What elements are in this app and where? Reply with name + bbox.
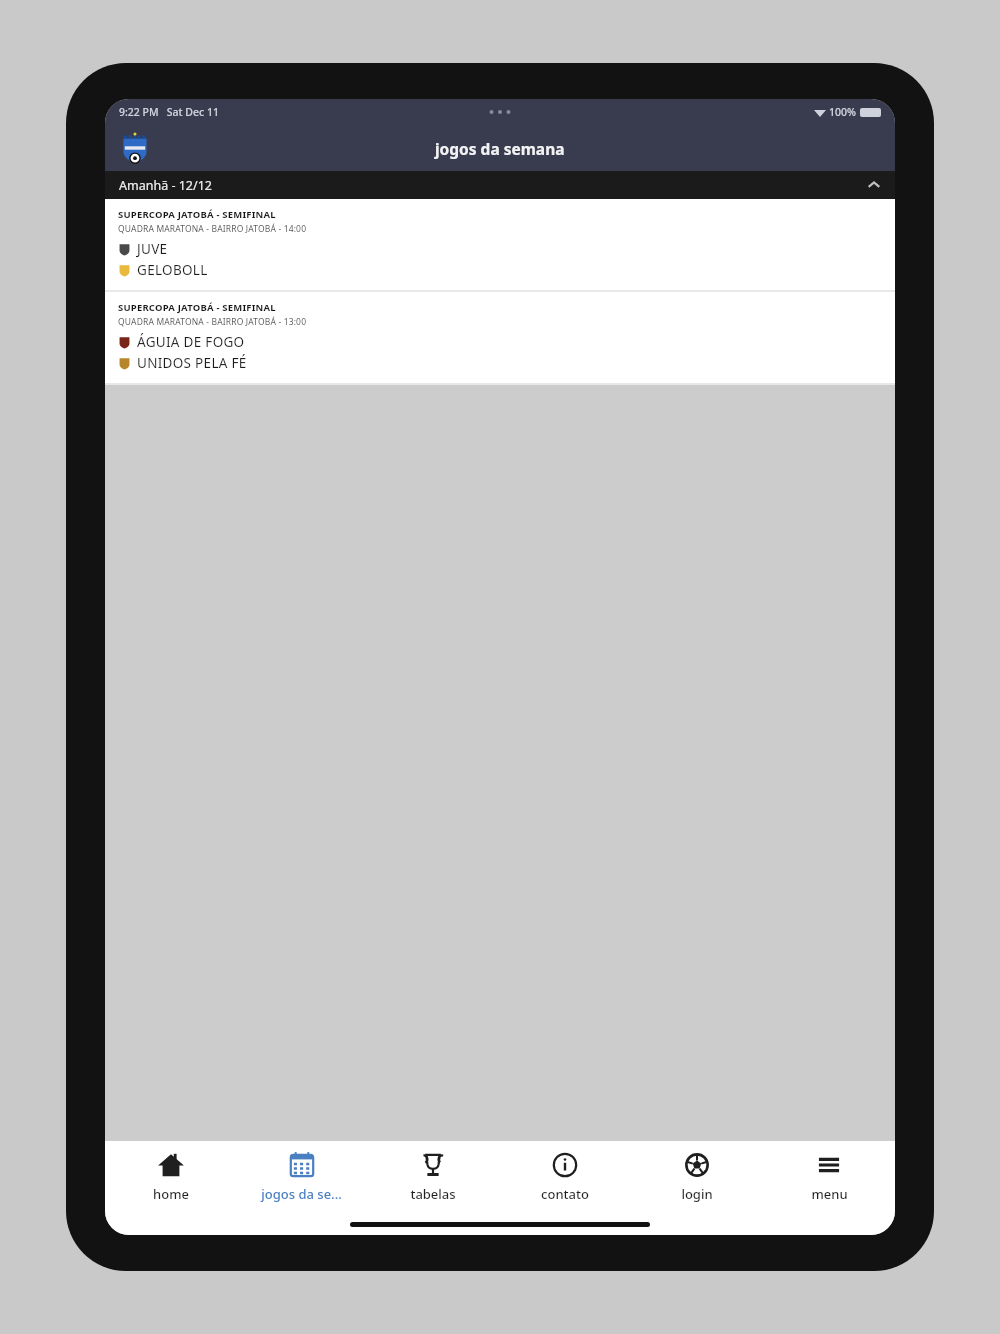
button[interactable]: menu [763,1141,895,1213]
button[interactable]: tabelas [367,1141,499,1213]
staticText: JUVE [137,240,168,258]
button[interactable]: home [105,1141,236,1213]
staticText: QUADRA MARATONA - BAIRRO JATOBÁ - 14:00 [118,223,307,235]
staticText: contato [541,1185,589,1203]
staticText: 9:22 PM Sat Dec 11 [119,105,219,119]
staticText: Amanhã - 12/12 [119,177,212,194]
button[interactable]: login [631,1141,763,1213]
staticText: menu [811,1185,848,1203]
button[interactable]: Amanhã - 12/12 [105,171,895,199]
staticText: GELOBOLL [137,261,208,279]
staticText: login [681,1185,713,1203]
staticText: QUADRA MARATONA - BAIRRO JATOBÁ - 13:00 [118,316,307,328]
staticText: SUPERCOPA JATOBÁ - SEMIFINAL [118,208,276,221]
staticText: jogos da se... [261,1185,342,1203]
staticText: jogos da semana [435,138,565,159]
button[interactable]: SUPERCOPA JATOBÁ - SEMIFINAL [105,199,895,290]
other: Collapse [867,178,881,192]
button[interactable]: SUPERCOPA JATOBÁ - SEMIFINAL [105,292,895,383]
button[interactable]: Logo [115,128,155,168]
staticText: 100% [829,105,856,119]
staticText: tabelas [410,1185,456,1203]
staticText: home [153,1185,189,1203]
button[interactable]: jogos da se... [236,1141,367,1213]
staticText: SUPERCOPA JATOBÁ - SEMIFINAL [118,301,276,314]
staticText: UNIDOS PELA FÉ [137,354,247,372]
button[interactable]: contato [499,1141,631,1213]
staticText: ÁGUIA DE FOGO [137,333,245,351]
